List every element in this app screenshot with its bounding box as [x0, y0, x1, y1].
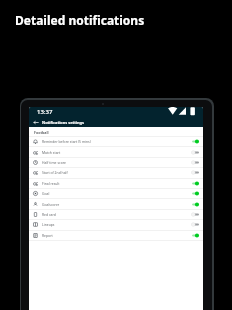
button[interactable]: Final result — [29, 178, 203, 188]
staticText: Reminder before start (5 mins) — [42, 139, 199, 144]
staticText: Notifications settings — [42, 120, 84, 125]
staticText: 13:37 — [37, 108, 53, 116]
button[interactable]: Start of 2nd half — [29, 167, 203, 177]
staticText: Red card — [42, 212, 199, 217]
button[interactable]: Back — [32, 118, 40, 126]
staticText: Detailed notifications — [15, 12, 145, 28]
staticText: Final result — [42, 181, 199, 186]
staticText: Goalscorer — [42, 202, 199, 207]
button[interactable]: Report — [29, 230, 203, 240]
button[interactable]: Half time score — [29, 157, 203, 167]
button[interactable]: Goalscorer — [29, 199, 203, 209]
button[interactable]: Red card — [29, 209, 203, 219]
staticText: Lineups — [42, 222, 199, 227]
staticText: Football — [34, 130, 49, 135]
button[interactable]: Match start — [29, 147, 203, 157]
staticText: Match start — [42, 150, 199, 155]
button[interactable]: Goal — [29, 188, 203, 198]
staticText: Report — [42, 233, 199, 238]
staticText: Start of 2nd half — [42, 170, 199, 175]
button[interactable]: Reminder before start (5 mins) — [29, 136, 203, 146]
staticText: Goal — [42, 191, 199, 196]
staticText: Half time score — [42, 160, 199, 165]
button[interactable]: Lineups — [29, 219, 203, 229]
